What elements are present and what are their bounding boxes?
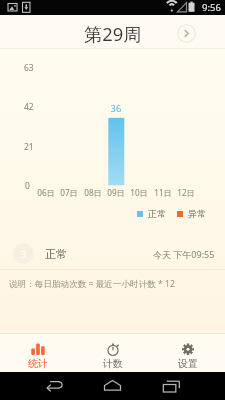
staticText: 11日 bbox=[150, 187, 176, 198]
button[interactable]: 3 bbox=[13, 238, 215, 269]
staticText: 异常 bbox=[188, 208, 206, 219]
button[interactable]: 计数 bbox=[75, 333, 150, 372]
staticText: 42 bbox=[24, 101, 34, 113]
staticText: 正常 bbox=[45, 247, 67, 261]
staticText: 08日 bbox=[80, 187, 106, 198]
staticText: 63 bbox=[24, 62, 34, 74]
button[interactable]: Next week bbox=[177, 24, 196, 43]
staticText: 3 bbox=[21, 248, 27, 260]
staticText: 正常 bbox=[148, 208, 166, 219]
staticText: 12日 bbox=[173, 187, 199, 198]
staticText: 计数 bbox=[103, 357, 123, 370]
staticText: 07日 bbox=[56, 187, 82, 198]
staticText: 说明：每日胎动次数 = 最近一小时计数 * 12 bbox=[9, 278, 175, 290]
staticText: 09日 bbox=[103, 187, 129, 198]
staticText: 36 bbox=[106, 102, 126, 115]
staticText: 统计 bbox=[28, 357, 48, 370]
button[interactable]: 设置 bbox=[150, 333, 225, 372]
staticText: 9:56 bbox=[202, 1, 221, 14]
staticText: 今天 下午09:55 bbox=[153, 248, 215, 260]
staticText: 0 bbox=[25, 180, 30, 192]
staticText: 21 bbox=[24, 141, 34, 153]
staticText: 第29周 bbox=[84, 21, 142, 46]
button[interactable]: 统计 bbox=[0, 333, 75, 372]
staticText: 10日 bbox=[126, 187, 152, 198]
staticText: 06日 bbox=[33, 187, 59, 198]
staticText: 设置 bbox=[178, 357, 198, 370]
